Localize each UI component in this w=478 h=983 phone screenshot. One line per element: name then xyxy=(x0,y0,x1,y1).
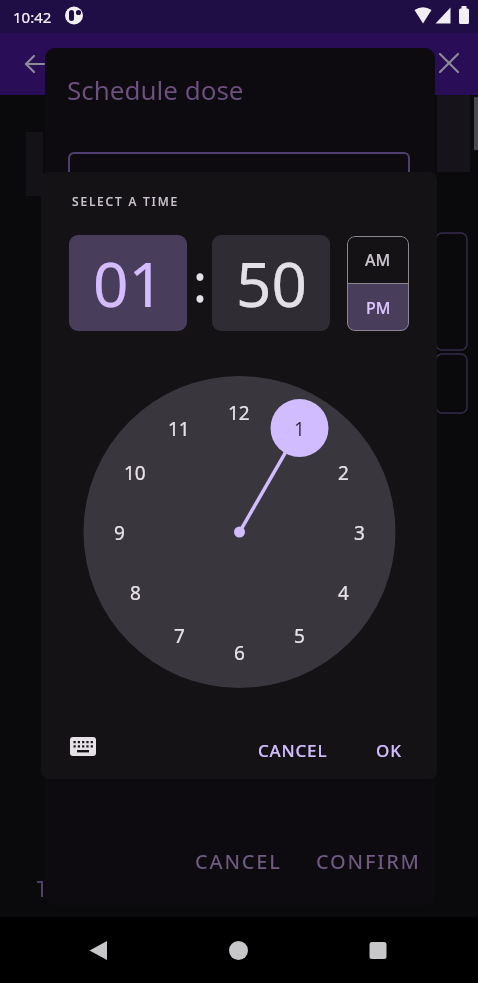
button[interactable]: PM xyxy=(347,284,409,331)
staticText: 01 xyxy=(93,241,164,325)
staticText: 4 xyxy=(338,580,349,604)
staticText: 6 xyxy=(234,640,245,664)
staticText: SELECT A TIME xyxy=(72,193,179,209)
staticText: AM xyxy=(365,249,391,271)
staticText: 2 xyxy=(338,460,349,484)
button[interactable]: OK xyxy=(363,738,415,762)
staticText: : xyxy=(193,246,207,317)
button[interactable] xyxy=(214,926,262,974)
button[interactable]: CONFIRM xyxy=(312,848,424,872)
button[interactable]: AM xyxy=(347,236,409,283)
button[interactable]: CANCEL xyxy=(188,848,288,872)
button[interactable] xyxy=(431,45,467,81)
button[interactable] xyxy=(74,926,122,974)
staticText: 9 xyxy=(114,520,125,544)
button[interactable] xyxy=(58,725,106,767)
staticText: 12 xyxy=(228,400,250,424)
button[interactable]: 50 xyxy=(212,235,330,331)
staticText: CANCEL xyxy=(195,848,282,872)
button[interactable] xyxy=(17,46,53,82)
staticText: Schedule dose xyxy=(67,72,244,107)
staticText: 10 xyxy=(124,460,146,484)
staticText: 5 xyxy=(294,623,305,647)
staticText: PM xyxy=(366,297,391,319)
staticText: 7 xyxy=(174,623,185,647)
staticText: 11 xyxy=(168,416,190,440)
staticText: CONFIRM xyxy=(316,848,421,872)
staticText: OK xyxy=(376,739,402,762)
staticText: 10:42 xyxy=(13,7,52,27)
staticText: 8 xyxy=(130,580,141,604)
staticText: 1 xyxy=(294,416,305,440)
staticText: 3 xyxy=(354,520,365,544)
button[interactable] xyxy=(354,926,402,974)
button[interactable]: 01 xyxy=(69,235,187,331)
staticText: CANCEL xyxy=(258,739,328,762)
staticText: 50 xyxy=(236,241,307,325)
button[interactable]: CANCEL xyxy=(243,738,343,762)
